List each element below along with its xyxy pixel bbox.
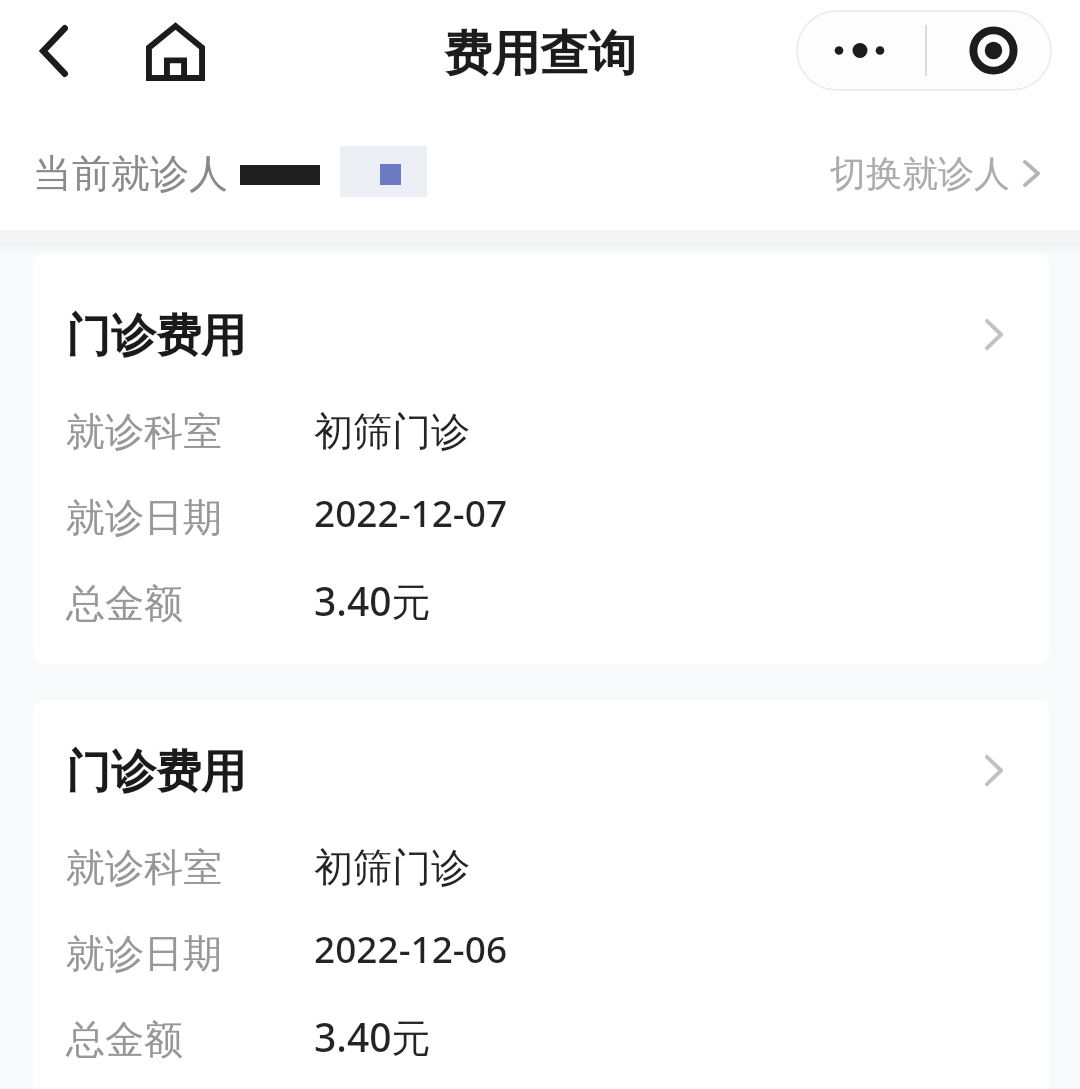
button[interactable]: Open details [963,737,1025,803]
staticText: 就诊日期 [66,493,222,542]
button[interactable]: 当前就诊人 [0,128,1080,218]
button[interactable]: 门诊费用 [33,253,1049,664]
staticText: 切换就诊人 [830,151,1010,196]
button[interactable]: Open details [963,301,1025,367]
staticText: 就诊科室 [66,843,222,892]
button[interactable]: More options [796,10,1052,91]
staticText: 费用查询 [444,24,636,84]
staticText: 3.40元 [314,574,431,627]
button[interactable]: 门诊费用 [33,700,1049,1089]
staticText: 总金额 [66,579,183,628]
staticText: 当前就诊人 [33,149,228,198]
staticText: 门诊费用 [66,744,246,801]
staticText: 就诊日期 [66,929,222,978]
staticText: 就诊科室 [66,407,222,456]
button[interactable]: Back [14,11,94,91]
staticText: 2022-12-06 [314,923,508,973]
staticText: 初筛门诊 [314,407,470,456]
staticText: 3.40元 [314,1010,431,1063]
staticText: 初筛门诊 [314,843,470,892]
staticText: 门诊费用 [66,308,246,365]
button[interactable]: Home [135,12,215,92]
staticText: 总金额 [66,1015,183,1064]
staticText: 2022-12-07 [314,487,508,537]
